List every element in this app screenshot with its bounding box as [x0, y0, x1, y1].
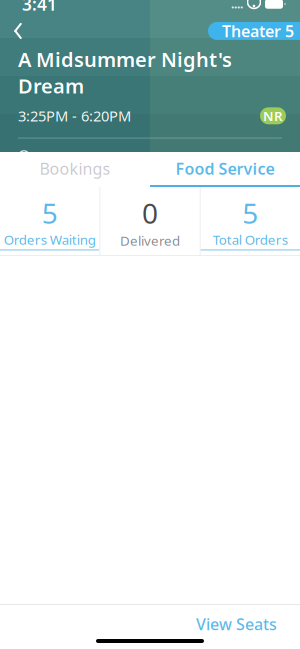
staticText: 3:25PM - 6:20PM: [18, 106, 131, 126]
staticText: 4:52: [110, 147, 138, 166]
staticText: Orders Waiting: [4, 231, 96, 248]
button[interactable]: Bookings: [0, 152, 150, 185]
button[interactable]: 5: [201, 187, 300, 255]
button[interactable]: Food Service: [150, 152, 300, 185]
staticText: Total Orders: [213, 231, 288, 248]
staticText: NR: [263, 107, 283, 125]
staticText: Food Service: [175, 158, 274, 179]
button[interactable]: 0: [100, 187, 200, 255]
button[interactable]: View Seats: [182, 606, 291, 642]
staticText: 3:41: [22, 0, 57, 15]
staticText: ....: [231, 0, 243, 12]
staticText: Bookings: [39, 158, 110, 179]
button[interactable]: 5: [0, 187, 99, 255]
button[interactable]: Theater 5: [208, 22, 300, 40]
staticText: 5: [42, 194, 58, 232]
staticText: 3:25: [74, 147, 102, 166]
button[interactable]: Back: [0, 16, 36, 46]
staticText: 0: [142, 194, 158, 232]
staticText: Delivered: [120, 232, 180, 249]
staticText: Theater 5: [222, 20, 294, 41]
staticText: A Midsummer Night's Dream: [18, 46, 232, 99]
staticText: 3:25: [38, 147, 66, 166]
staticText: 5: [242, 194, 258, 232]
staticText: View Seats: [196, 613, 277, 635]
staticText: 6:20: [146, 147, 174, 166]
